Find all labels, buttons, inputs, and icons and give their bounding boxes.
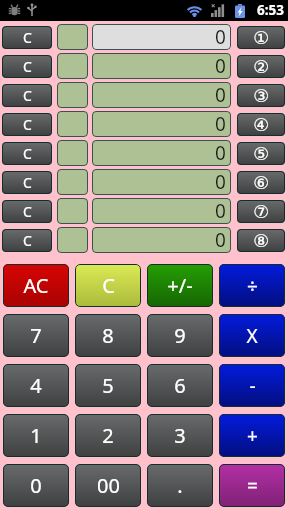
staticText: ÷ [247,273,258,299]
staticText: 4 [30,372,42,399]
button[interactable]: 00 [75,464,141,507]
button[interactable]: 3 [147,414,213,457]
button[interactable]: ⑦ [237,200,285,223]
button[interactable]: ① [237,26,285,49]
button[interactable]: C [2,142,52,165]
staticText: ④ [253,115,269,135]
button[interactable]: 0 [92,227,231,253]
staticText: 0 [215,227,226,253]
button[interactable]: Memory 8 [57,227,88,253]
button[interactable]: 7 [3,314,69,357]
button[interactable]: X [219,314,285,357]
button[interactable]: ⑥ [237,171,285,194]
staticText: C [23,115,32,134]
staticText: ⑥ [253,173,269,193]
staticText: +/- [167,272,193,299]
staticText: 2 [102,422,114,449]
button[interactable]: C [2,84,52,107]
staticText: X [246,323,258,349]
button[interactable]: 0 [3,464,69,507]
button[interactable]: C [2,229,52,252]
button[interactable]: ④ [237,113,285,136]
staticText: 0 [215,140,226,166]
staticText: ② [253,57,269,77]
button[interactable]: C [2,55,52,78]
staticText: 00 [97,472,120,499]
staticText: 6 [174,372,186,399]
button[interactable]: - [219,364,285,407]
staticText: ① [253,28,269,48]
button[interactable]: C [2,113,52,136]
staticText: ③ [253,86,269,106]
staticText: ⑧ [253,231,269,251]
staticText: 9 [174,322,186,349]
button[interactable]: Memory 5 [57,140,88,166]
button[interactable]: ÷ [219,264,285,307]
staticText: 0 [215,24,226,50]
staticText: 0 [30,472,42,499]
button[interactable]: 4 [3,364,69,407]
button[interactable]: C [2,200,52,223]
button[interactable]: 9 [147,314,213,357]
staticText: . [177,472,183,499]
staticText: ⑦ [253,202,269,222]
button[interactable]: + [219,414,285,457]
staticText: - [249,373,256,399]
button[interactable]: 5 [75,364,141,407]
staticText: 0 [215,53,226,79]
button[interactable]: 0 [92,53,231,79]
button[interactable]: ⑧ [237,229,285,252]
staticText: ⑤ [253,144,269,164]
button[interactable]: ⑤ [237,142,285,165]
staticText: C [23,57,32,76]
button[interactable]: . [147,464,213,507]
button[interactable]: 0 [92,111,231,137]
staticText: 0 [215,169,226,195]
staticText: AC [23,272,49,299]
staticText: 6:53 [257,1,284,19]
staticText: + [247,423,258,449]
staticText: C [23,173,32,192]
button[interactable]: 0 [92,24,231,50]
staticText: C [102,272,115,299]
button[interactable]: 0 [92,198,231,224]
staticText: 3 [174,422,186,449]
button[interactable]: Memory 6 [57,169,88,195]
button[interactable]: 1 [3,414,69,457]
staticText: 8 [102,322,114,349]
staticText: 0 [215,111,226,137]
staticText: C [23,28,32,47]
button[interactable]: Memory 7 [57,198,88,224]
staticText: 0 [215,82,226,108]
staticText: 7 [30,322,42,349]
button[interactable]: +/- [147,264,213,307]
button[interactable]: Memory 1 [57,24,88,50]
button[interactable]: ② [237,55,285,78]
staticText: C [23,231,32,250]
button[interactable]: ③ [237,84,285,107]
staticText: 0 [215,198,226,224]
button[interactable]: 0 [92,169,231,195]
button[interactable]: 0 [92,82,231,108]
button[interactable]: Memory 4 [57,111,88,137]
button[interactable]: 6 [147,364,213,407]
button[interactable]: C [2,171,52,194]
button[interactable]: C [2,26,52,49]
button[interactable]: Memory 2 [57,53,88,79]
button[interactable]: AC [3,264,69,307]
button[interactable]: 0 [92,140,231,166]
staticText: C [23,86,32,105]
button[interactable]: = [219,464,285,507]
staticText: 5 [102,372,114,399]
staticText: 1 [30,422,42,449]
button[interactable]: C [75,264,141,307]
staticText: C [23,144,32,163]
staticText: C [23,202,32,221]
button[interactable]: 2 [75,414,141,457]
button[interactable]: 8 [75,314,141,357]
button[interactable]: Memory 3 [57,82,88,108]
staticText: = [247,473,258,499]
